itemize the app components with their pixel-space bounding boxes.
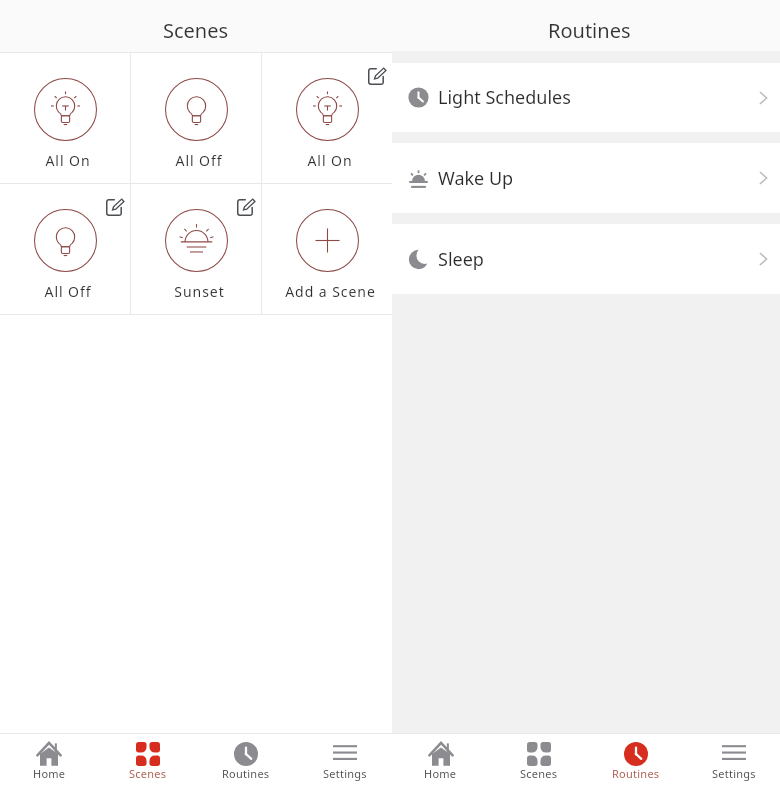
- button[interactable]: Routines: [586, 734, 683, 788]
- staticText: Home: [424, 766, 457, 781]
- staticText: Scenes: [163, 17, 229, 44]
- staticText: Add a Scene: [285, 282, 376, 301]
- staticText: Routines: [222, 766, 270, 781]
- button[interactable]: All Off: [131, 53, 261, 183]
- button[interactable]: All On: [262, 53, 392, 183]
- staticText: Scenes: [129, 766, 167, 781]
- staticText: All On: [307, 151, 353, 170]
- button[interactable]: Home: [392, 734, 489, 788]
- staticText: All Off: [175, 151, 223, 170]
- button[interactable]: Settings: [683, 734, 780, 788]
- staticText: Wake Up: [438, 166, 514, 191]
- button[interactable]: Scenes: [489, 734, 586, 788]
- button[interactable]: Edit scene: [237, 199, 254, 216]
- button[interactable]: Edit scene: [106, 199, 123, 216]
- button[interactable]: Settings: [294, 734, 392, 788]
- button[interactable]: Scenes: [98, 734, 196, 788]
- button[interactable]: Sleep: [392, 224, 780, 294]
- staticText: Sleep: [438, 247, 484, 272]
- staticText: Settings: [712, 766, 756, 781]
- staticText: Routines: [548, 17, 631, 44]
- button[interactable]: All Off: [0, 184, 130, 314]
- button[interactable]: Wake Up: [392, 143, 780, 213]
- button[interactable]: Routines: [196, 734, 294, 788]
- button[interactable]: Home: [0, 734, 98, 788]
- staticText: Settings: [323, 766, 367, 781]
- staticText: All On: [45, 151, 91, 170]
- button[interactable]: Sunset: [131, 184, 261, 314]
- staticText: All Off: [44, 282, 92, 301]
- button[interactable]: Add a Scene: [262, 184, 392, 314]
- staticText: Sunset: [174, 282, 225, 301]
- staticText: Scenes: [520, 766, 558, 781]
- button[interactable]: All On: [0, 53, 130, 183]
- button[interactable]: Light Schedules: [392, 63, 780, 132]
- staticText: Routines: [612, 766, 660, 781]
- staticText: Light Schedules: [438, 85, 571, 110]
- button[interactable]: Edit scene: [368, 68, 385, 85]
- staticText: Home: [33, 766, 66, 781]
